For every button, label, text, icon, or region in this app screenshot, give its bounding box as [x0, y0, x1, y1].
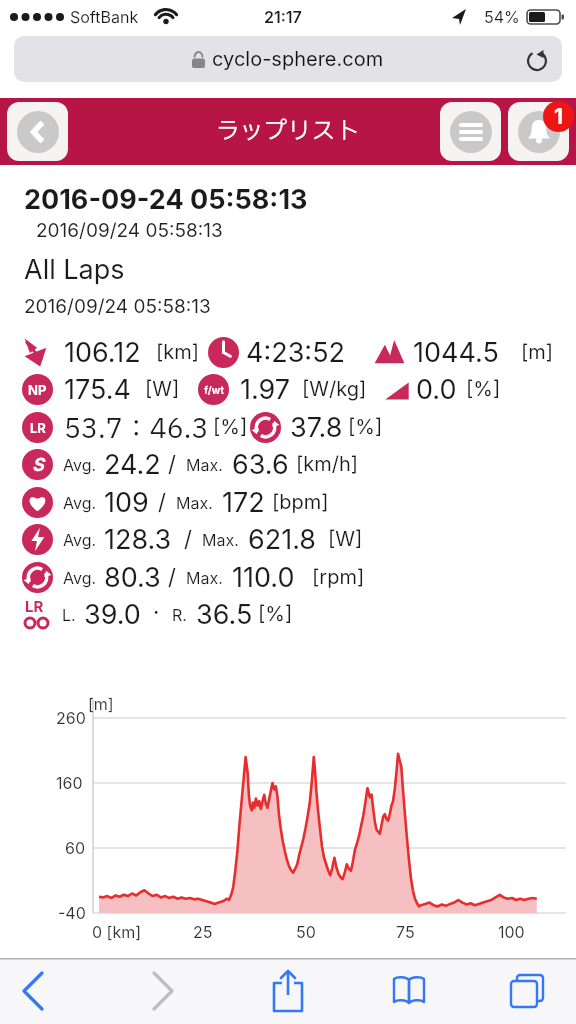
staticText: / — [168, 564, 176, 591]
staticText: Max. — [186, 455, 223, 474]
staticText: 60 — [65, 838, 86, 857]
staticText: 128.3 — [104, 523, 172, 556]
staticText: [bpm] — [272, 490, 329, 514]
staticText: Avg. — [63, 493, 97, 512]
staticText: 0.0 — [416, 373, 457, 406]
staticText: 100 — [498, 922, 525, 941]
staticText: LR — [30, 420, 46, 436]
staticText: [%] — [466, 377, 501, 401]
button[interactable] — [10, 968, 56, 1014]
staticText: S — [32, 454, 44, 476]
staticText: R. — [172, 605, 187, 624]
staticText: 160 — [56, 773, 83, 792]
staticText: 1 — [554, 104, 564, 129]
staticText: [W] — [328, 527, 363, 551]
staticText: 110.0 — [232, 561, 295, 594]
staticText: 260 — [56, 708, 86, 727]
staticText: [m] — [521, 340, 554, 364]
button[interactable] — [502, 968, 552, 1014]
staticText: 172 — [222, 486, 265, 519]
staticText: NP — [28, 382, 47, 398]
button[interactable] — [265, 964, 311, 1018]
staticText: 80.3 — [104, 561, 161, 594]
staticText: 63.6 — [232, 448, 289, 481]
staticText: 2016/09/24 05:58:13 — [36, 219, 223, 242]
staticText: [%] — [213, 415, 248, 439]
staticText: Avg. — [63, 455, 97, 474]
staticText: [%] — [258, 602, 293, 626]
staticText: L. — [62, 605, 76, 624]
staticText: 0 [km] — [92, 922, 142, 941]
staticText: ラップリスト — [216, 114, 360, 150]
staticText: / — [184, 526, 192, 553]
staticText: 37.8 — [290, 411, 343, 444]
staticText: 75 — [396, 922, 415, 941]
staticText: 53.7：46.3 — [64, 409, 209, 445]
staticText: All Laps — [24, 253, 125, 286]
button[interactable] — [384, 968, 434, 1014]
button[interactable] — [526, 50, 548, 72]
staticText: 24.2 — [104, 448, 161, 481]
button[interactable] — [7, 102, 68, 161]
staticText: 109 — [104, 486, 149, 519]
staticText: 2016-09-24 05:58:13 — [24, 183, 308, 216]
staticText: [rpm] — [312, 565, 365, 589]
staticText: 1.97 — [240, 373, 291, 406]
staticText: [km/h] — [296, 452, 359, 476]
staticText: 106.12 — [64, 336, 141, 369]
staticText: ・ — [146, 599, 166, 629]
staticText: / — [158, 489, 166, 516]
staticText: / — [168, 451, 176, 478]
staticText: 36.5 — [196, 598, 253, 631]
staticText: [W/kg] — [302, 377, 367, 401]
staticText: SoftBank — [70, 7, 139, 26]
staticText: 175.4 — [64, 373, 131, 406]
staticText: [%] — [348, 415, 383, 439]
staticText: cyclo-sphere.com — [212, 47, 384, 71]
button[interactable] — [508, 102, 569, 161]
staticText: LR — [25, 597, 44, 615]
staticText: f/wt — [204, 384, 224, 396]
staticText: 25 — [193, 922, 213, 941]
staticText: 39.0 — [84, 598, 141, 631]
staticText: 21:17 — [264, 7, 302, 26]
staticText: Max. — [176, 493, 213, 512]
staticText: 2016/09/24 05:58:13 — [24, 295, 211, 318]
button[interactable] — [140, 968, 186, 1014]
staticText: Max. — [186, 568, 223, 587]
staticText: 1044.5 — [413, 336, 499, 369]
staticText: Avg. — [63, 530, 97, 549]
staticText: -40 — [58, 903, 86, 922]
staticText: Max. — [202, 530, 239, 549]
staticText: 4:23:52 — [246, 336, 346, 369]
staticText: [m] — [88, 694, 114, 713]
staticText: 50 — [296, 922, 316, 941]
staticText: 54% — [484, 7, 520, 26]
button[interactable]: cyclo-sphere.com — [14, 36, 562, 82]
button[interactable] — [440, 102, 501, 161]
staticText: 621.8 — [248, 523, 317, 556]
staticText: [km] — [156, 340, 200, 364]
staticText: Avg. — [63, 568, 97, 587]
staticText: [W] — [145, 377, 180, 401]
